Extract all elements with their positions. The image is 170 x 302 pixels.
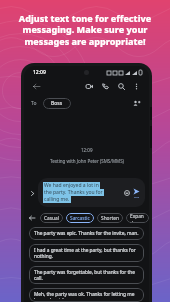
button[interactable]: Video call — [83, 80, 96, 93]
staticText: calling me. — [44, 196, 70, 203]
staticText: Meh, the party was ok. Thanks for lettin… — [34, 291, 139, 299]
staticText: 12:09 — [81, 147, 93, 153]
button[interactable]: Call — [99, 80, 112, 93]
staticText: SMS — [134, 195, 140, 198]
staticText: Adjust text tone for effective messaging… — [12, 12, 158, 48]
button[interactable]: Back — [27, 213, 37, 223]
button[interactable]: Shorten — [97, 213, 123, 223]
staticText: the party. Thanks you for — [44, 189, 103, 196]
button[interactable]: We had enjoyed a lot in — [38, 178, 145, 207]
button[interactable]: Sarcastic — [66, 213, 94, 223]
button[interactable]: Casual — [40, 213, 63, 223]
staticText: I had a great time at the party, but tha… — [34, 247, 139, 259]
button[interactable]: Back — [30, 80, 43, 93]
button[interactable]: More options — [130, 80, 143, 93]
staticText: The party was forgettable, but thanks fo… — [34, 269, 139, 281]
button[interactable]: Send SMS — [133, 188, 140, 198]
button[interactable]: Search — [115, 80, 128, 93]
button[interactable]: The party was forgettable, but thanks fo… — [29, 266, 144, 284]
button[interactable]: Meh, the party was ok. Thanks for lettin… — [29, 288, 144, 302]
button[interactable]: The party was epic. Thanks for the invit… — [29, 227, 144, 240]
staticText: Texting with John Peter (SMS/MMS) — [50, 158, 124, 164]
button[interactable]: I had a great time at the party, but tha… — [29, 244, 144, 262]
staticText: Expand — [130, 213, 145, 223]
button[interactable]: Expand — [126, 213, 149, 223]
button[interactable]: Expand — [28, 189, 36, 197]
staticText: Boss — [51, 100, 63, 107]
staticText: The party was epic. Thanks for the invit… — [34, 230, 139, 237]
staticText: 12:09 — [33, 69, 46, 76]
staticText: Casual — [44, 215, 59, 222]
staticText: Shorten — [101, 215, 119, 222]
staticText: We had enjoyed a lot in — [44, 182, 99, 189]
button[interactable]: Add contact — [130, 97, 142, 109]
button[interactable]: Boss — [43, 98, 71, 109]
staticText: To — [31, 100, 37, 107]
staticText: Sarcastic — [70, 215, 90, 222]
button[interactable]: Emoji — [122, 188, 131, 197]
